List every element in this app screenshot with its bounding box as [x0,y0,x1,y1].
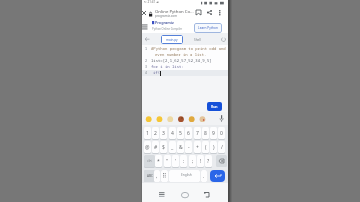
button[interactable]: 5 [177,127,184,139]
staticText: " [166,158,169,165]
staticText: # [154,144,158,151]
staticText: ! [200,158,202,165]
staticText: : [183,158,185,165]
button[interactable]: # [152,141,159,153]
button[interactable]: ! [197,155,204,167]
button[interactable]: Run [207,102,222,111]
staticText: ? [207,158,210,165]
button[interactable]: 6 [185,127,192,139]
staticText: ' [175,158,177,165]
staticText: for i in list: [151,64,184,69]
staticText: ABC [147,174,153,178]
button[interactable]: Shell [188,35,206,44]
staticText: 3 [162,130,165,137]
staticText: main.py [166,38,178,42]
staticText: ↻ 21:41 ◄ [144,0,159,4]
button[interactable]: 9 [210,127,217,139]
button[interactable]: _ [169,141,176,153]
staticText: Shell [194,38,201,42]
staticText: ) [213,144,215,151]
button[interactable] [204,192,210,198]
button[interactable]: main.py [161,35,183,44]
button[interactable]: 7 [194,127,201,139]
staticText: Programiz [155,20,174,25]
staticText: - [188,144,190,151]
staticText: 7 [196,130,199,137]
button[interactable]: 3 [160,127,167,139]
staticText: #Python program to print odd and [151,46,226,51]
staticText: & [179,144,183,151]
button[interactable] [216,155,227,167]
staticText: 1 [146,130,149,137]
button[interactable]: ' [172,155,179,167]
button[interactable]: ? [205,155,212,167]
staticText: English [181,173,192,177]
staticText: 2 [145,58,148,63]
staticText: _ [171,144,174,151]
staticText: Python Online Compiler [152,27,183,31]
button[interactable]: ABC [144,170,155,182]
button[interactable] [161,170,168,182]
staticText: Run [211,104,218,109]
button[interactable]: ( [202,141,209,153]
button[interactable]: - [185,141,192,153]
staticText: 3 [145,64,148,69]
button[interactable]: =\< [144,155,155,167]
button[interactable]: ; [189,155,196,167]
staticText: * [157,158,160,165]
button[interactable]: 2 [152,127,159,139]
staticText: $ [162,144,165,151]
staticText: Online Python Co... [155,8,194,14]
staticText: 5 [179,130,182,137]
button[interactable]: @ [144,141,151,153]
button[interactable]: Learn Python [194,23,222,33]
button[interactable]: : [180,155,187,167]
button[interactable]: 8 [202,127,209,139]
button[interactable] [181,192,189,198]
button[interactable]: . [201,170,207,182]
button[interactable]: " [164,155,171,167]
staticText: ; [192,158,194,165]
staticText: 6 [187,130,190,137]
staticText: =\< [147,159,152,163]
staticText: 0 [220,130,223,137]
staticText: . [203,173,205,180]
button[interactable] [210,170,225,182]
button[interactable]: & [177,141,184,153]
button[interactable]: 0 [218,127,225,139]
staticText: 9 [212,130,215,137]
staticText: ( [205,144,207,151]
button[interactable]: 4 [169,127,176,139]
button[interactable]: / [218,141,225,153]
button[interactable] [159,192,165,198]
button[interactable]: 1 [144,127,151,139]
staticText: 1 [145,46,148,51]
button[interactable]: $ [160,141,167,153]
button[interactable] [169,170,200,182]
button[interactable]: + [194,141,201,153]
button[interactable]: ) [210,141,217,153]
staticText: if( [153,70,161,75]
staticText: programiz.com [155,14,178,18]
staticText: 4 [145,70,148,75]
staticText: list=[2,1,62,57,52,34,9,5] [151,58,212,63]
staticText: / [221,144,223,151]
staticText: even number in a list. [155,52,207,57]
staticText: 4 [171,130,174,137]
staticText: , [156,173,158,180]
staticText: + [196,144,199,151]
staticText: 8 [204,130,207,137]
staticText: 2 [154,130,157,137]
staticText: @ [145,144,150,151]
button[interactable]: , [154,170,160,182]
button[interactable]: * [155,155,162,167]
staticText: Learn Python [198,26,218,30]
